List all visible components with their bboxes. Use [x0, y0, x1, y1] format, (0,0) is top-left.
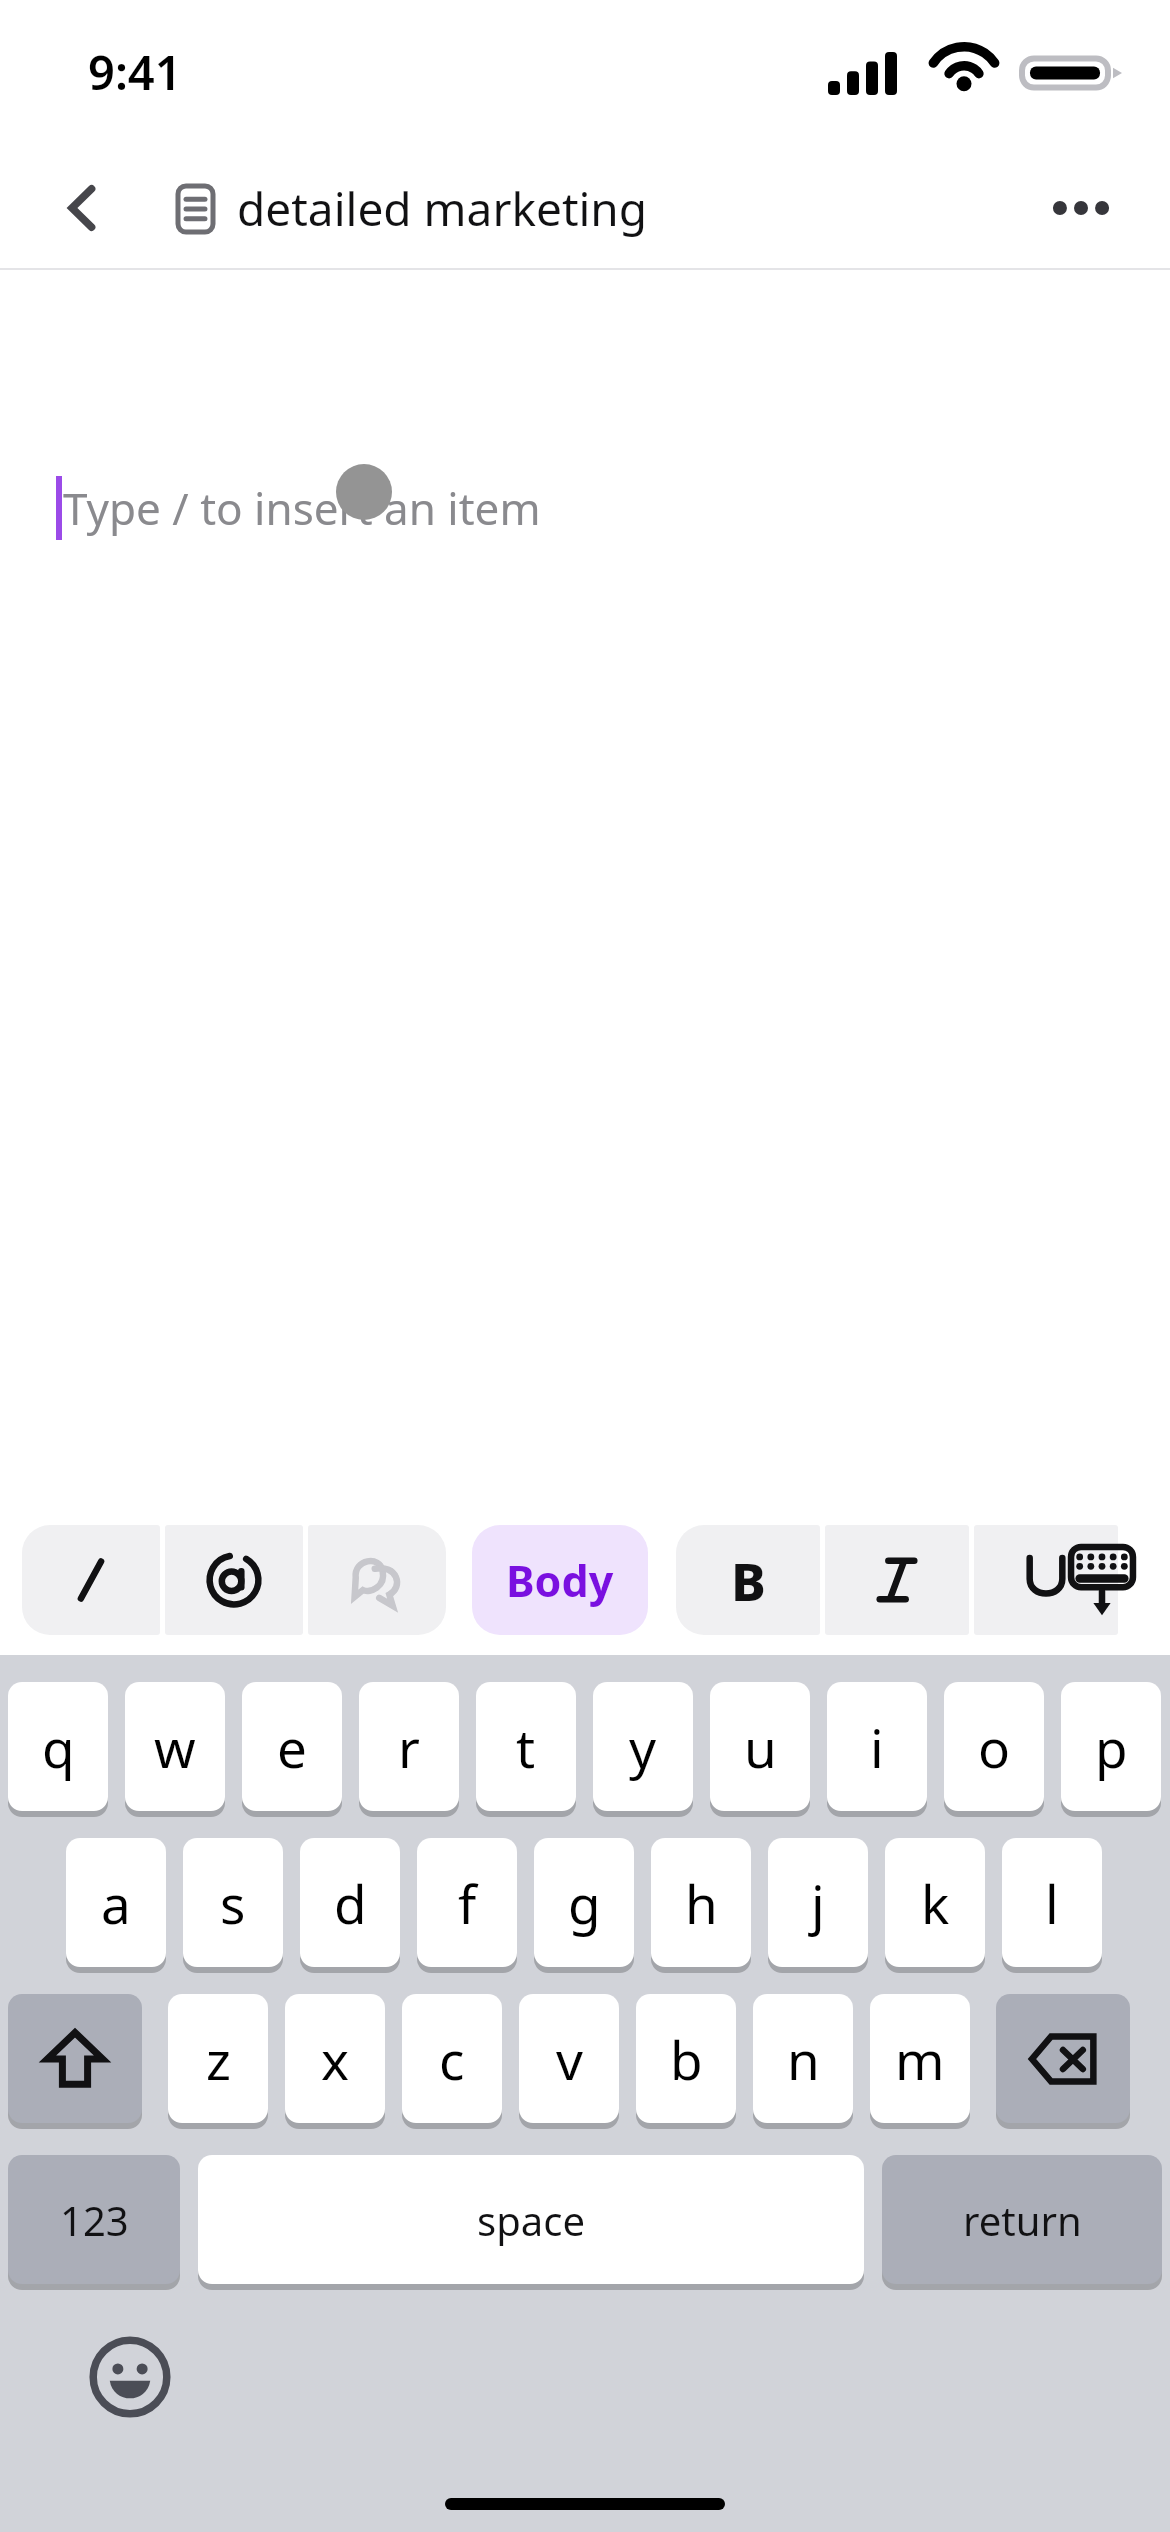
- staticText: i: [870, 1711, 884, 1783]
- button[interactable]: s: [183, 1838, 283, 1967]
- staticText: q: [42, 1711, 75, 1783]
- staticText: p: [1095, 1711, 1128, 1783]
- button[interactable]: Return: [882, 2155, 1162, 2284]
- button[interactable]: m: [870, 1994, 970, 2123]
- staticText: e: [277, 1711, 307, 1783]
- staticText: f: [458, 1867, 477, 1939]
- staticText: c: [439, 2023, 465, 2095]
- button[interactable]: g: [534, 1838, 634, 1967]
- button[interactable]: Numbers: [8, 2155, 180, 2284]
- button[interactable]: detailed marketing: [178, 177, 648, 240]
- button[interactable]: Body: [472, 1525, 648, 1635]
- button[interactable]: More options: [1034, 161, 1128, 255]
- button[interactable]: d: [300, 1838, 400, 1967]
- staticText: d: [334, 1867, 367, 1939]
- button[interactable]: Mention: [165, 1525, 303, 1635]
- button[interactable]: Bold: [676, 1525, 820, 1635]
- staticText: z: [206, 2023, 231, 2095]
- button[interactable]: c: [402, 1994, 502, 2123]
- staticText: B: [731, 1545, 766, 1616]
- staticText: j: [811, 1867, 825, 1939]
- button[interactable]: Type / to insert an item: [0, 270, 1170, 1505]
- staticText: n: [787, 2023, 820, 2095]
- staticText: x: [321, 2023, 350, 2095]
- button[interactable]: Hide keyboard: [1052, 1530, 1152, 1630]
- staticText: b: [670, 2023, 703, 2095]
- button[interactable]: y: [593, 1682, 693, 1811]
- staticText: k: [921, 1867, 950, 1939]
- staticText: Type / to insert an item: [63, 478, 541, 538]
- staticText: return: [963, 2193, 1082, 2247]
- staticText: g: [568, 1867, 601, 1939]
- button[interactable]: e: [242, 1682, 342, 1811]
- staticText: r: [398, 1711, 420, 1783]
- button[interactable]: Emoji: [80, 2327, 180, 2427]
- staticText: 123: [60, 2193, 129, 2247]
- button[interactable]: b: [636, 1994, 736, 2123]
- button[interactable]: k: [885, 1838, 985, 1967]
- staticText: 9:41: [88, 40, 182, 104]
- staticText: Body: [506, 1551, 614, 1610]
- staticText: o: [978, 1711, 1011, 1783]
- staticText: m: [895, 2023, 945, 2095]
- button[interactable]: r: [359, 1682, 459, 1811]
- button[interactable]: q: [8, 1682, 108, 1811]
- button[interactable]: p: [1061, 1682, 1161, 1811]
- staticText: space: [477, 2193, 585, 2247]
- staticText: s: [220, 1867, 246, 1939]
- staticText: h: [685, 1867, 718, 1939]
- staticText: t: [516, 1711, 536, 1783]
- button[interactable]: v: [519, 1994, 619, 2123]
- button[interactable]: f: [417, 1838, 517, 1967]
- button[interactable]: l: [1002, 1838, 1102, 1967]
- button[interactable]: u: [710, 1682, 810, 1811]
- button[interactable]: n: [753, 1994, 853, 2123]
- button[interactable]: o: [944, 1682, 1044, 1811]
- staticText: y: [629, 1711, 657, 1783]
- staticText: l: [1045, 1867, 1059, 1939]
- button[interactable]: space: [198, 2155, 864, 2284]
- button[interactable]: i: [827, 1682, 927, 1811]
- button[interactable]: Underline: [974, 1525, 1118, 1635]
- button[interactable]: a: [66, 1838, 166, 1967]
- button[interactable]: Comment: [308, 1525, 446, 1635]
- staticText: u: [744, 1711, 777, 1783]
- button[interactable]: t: [476, 1682, 576, 1811]
- staticText: w: [154, 1711, 196, 1783]
- button[interactable]: Back: [38, 163, 128, 253]
- button[interactable]: w: [125, 1682, 225, 1811]
- button[interactable]: j: [768, 1838, 868, 1967]
- button[interactable]: z: [168, 1994, 268, 2123]
- button[interactable]: x: [285, 1994, 385, 2123]
- button[interactable]: Shift: [8, 1994, 142, 2123]
- staticText: a: [101, 1867, 131, 1939]
- staticText: detailed marketing: [237, 177, 648, 240]
- button[interactable]: Backspace: [996, 1994, 1130, 2123]
- button[interactable]: Italic: [825, 1525, 969, 1635]
- staticText: v: [556, 2023, 583, 2095]
- button[interactable]: h: [651, 1838, 751, 1967]
- button[interactable]: Slash command: [22, 1525, 160, 1635]
